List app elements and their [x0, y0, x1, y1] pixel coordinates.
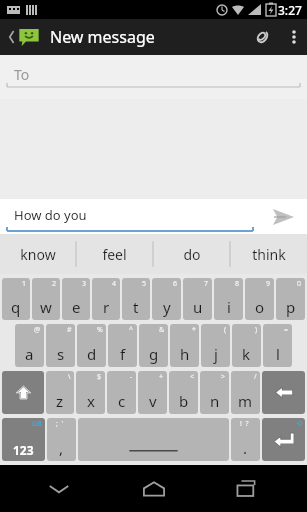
- staticText: q: [11, 297, 21, 317]
- button[interactable]: <: [169, 371, 198, 414]
- button[interactable]: del: [262, 371, 305, 414]
- button[interactable]: GB: [2, 418, 45, 461]
- staticText: -: [130, 372, 133, 382]
- button[interactable]: 8: [214, 278, 243, 320]
- button[interactable]: shift: [2, 371, 44, 414]
- button[interactable]: think: [230, 234, 307, 274]
- staticText: z: [56, 391, 64, 411]
- button[interactable]: >: [200, 371, 229, 414]
- staticText: l: [276, 344, 280, 364]
- staticText: u: [193, 297, 203, 317]
- button[interactable]: %: [77, 324, 106, 367]
- button[interactable]: 2: [32, 278, 60, 320]
- button[interactable]: ! ?: [231, 418, 260, 461]
- button[interactable]: feel: [76, 234, 153, 274]
- staticText: /: [254, 372, 257, 382]
- staticText: j: [214, 344, 218, 364]
- button[interactable]: enter: [262, 418, 305, 461]
- staticText: think: [252, 245, 286, 264]
- staticText: $: [97, 372, 102, 382]
- button[interactable]: 9: [245, 278, 274, 320]
- staticText: *: [192, 325, 196, 335]
- staticText: 123: [13, 442, 34, 458]
- staticText: To: [14, 65, 30, 84]
- staticText: 6: [173, 279, 178, 289]
- staticText: c: [118, 391, 126, 411]
- button[interactable]: 6: [152, 278, 181, 320]
- button[interactable]: Send: [259, 199, 307, 234]
- button[interactable]: /: [231, 371, 260, 414]
- staticText: GB: [32, 419, 42, 429]
- button[interactable]: More options: [281, 19, 307, 55]
- button[interactable]: ): [232, 324, 261, 367]
- button[interactable]: know: [0, 234, 76, 274]
- button[interactable]: How do you: [0, 199, 259, 234]
- button[interactable]: Home: [119, 465, 189, 512]
- staticText: ! ?: [240, 419, 249, 429]
- staticText: y: [163, 297, 171, 317]
- button[interactable]: space: [78, 418, 229, 461]
- button[interactable]: @: [15, 324, 44, 367]
- button[interactable]: Attach: [241, 19, 281, 55]
- staticText: New message: [50, 26, 155, 48]
- staticText: d: [87, 344, 97, 364]
- button[interactable]: ^: [108, 324, 137, 367]
- staticText: f: [120, 344, 126, 364]
- staticText: How do you: [14, 206, 87, 224]
- staticText: do: [183, 245, 201, 264]
- staticText: 9: [266, 279, 271, 289]
- staticText: &: [159, 325, 165, 335]
- staticText: 3:27: [278, 2, 302, 18]
- staticText: @: [34, 325, 41, 335]
- staticText: w: [40, 297, 52, 317]
- button[interactable]: ; ': [47, 418, 76, 461]
- staticText: ,: [59, 438, 64, 458]
- button[interactable]: 1: [2, 278, 30, 320]
- staticText: 4: [112, 279, 117, 289]
- button[interactable]: 7: [183, 278, 212, 320]
- staticText: know: [20, 245, 56, 264]
- button[interactable]: (: [201, 324, 230, 367]
- button[interactable]: =: [263, 324, 292, 367]
- button[interactable]: *: [170, 324, 199, 367]
- button[interactable]: To: [0, 55, 307, 99]
- staticText: g: [149, 344, 159, 364]
- staticText: #: [67, 325, 72, 335]
- staticText: p: [286, 297, 296, 317]
- staticText: <: [190, 372, 195, 382]
- button[interactable]: Back: [4, 26, 44, 48]
- staticText: 5: [142, 279, 147, 289]
- staticText: %: [97, 325, 103, 335]
- staticText: r: [103, 297, 110, 317]
- staticText: m: [238, 391, 253, 411]
- button[interactable]: 0: [276, 278, 305, 320]
- button[interactable]: Recent apps: [213, 465, 283, 512]
- button[interactable]: \: [46, 371, 74, 414]
- staticText: 1: [22, 279, 27, 289]
- staticText: (: [224, 325, 227, 335]
- staticText: e: [72, 297, 81, 317]
- staticText: n: [210, 391, 220, 411]
- button[interactable]: $: [76, 371, 105, 414]
- staticText: ·0: [296, 419, 302, 429]
- button[interactable]: Back: [24, 465, 94, 512]
- staticText: i: [227, 297, 231, 317]
- staticText: x: [87, 391, 95, 411]
- button[interactable]: 5: [122, 278, 150, 320]
- button[interactable]: do: [153, 234, 230, 274]
- button[interactable]: #: [46, 324, 75, 367]
- staticText: >: [221, 372, 226, 382]
- staticText: s: [57, 344, 65, 364]
- button[interactable]: 3: [62, 278, 90, 320]
- button[interactable]: +: [138, 371, 167, 414]
- staticText: k: [242, 344, 251, 364]
- staticText: ^: [129, 325, 134, 335]
- staticText: b: [179, 391, 189, 411]
- staticText: .: [243, 438, 248, 458]
- button[interactable]: &: [139, 324, 168, 367]
- staticText: o: [255, 297, 265, 317]
- staticText: v: [149, 391, 157, 411]
- button[interactable]: 4: [92, 278, 120, 320]
- staticText: t: [133, 297, 139, 317]
- button[interactable]: -: [107, 371, 136, 414]
